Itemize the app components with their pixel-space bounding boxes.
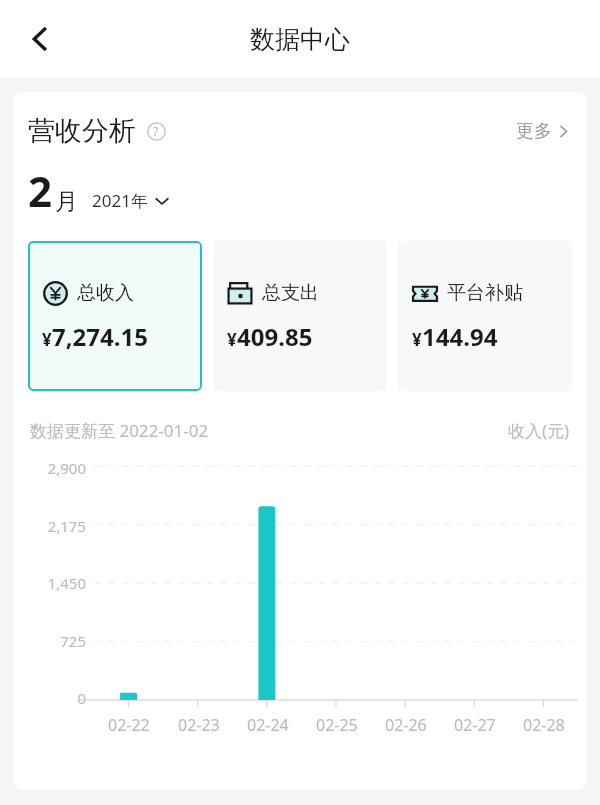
- staticText: 02-23: [178, 714, 220, 736]
- button[interactable]: Back: [14, 13, 66, 65]
- staticText: 725: [60, 631, 86, 651]
- staticText: ¥: [227, 328, 237, 351]
- staticText: ?: [153, 123, 159, 139]
- staticText: 营收分析: [28, 114, 136, 148]
- staticText: 月: [55, 187, 78, 216]
- staticText: 平台补贴: [447, 281, 523, 305]
- staticText: 总收入: [77, 281, 134, 305]
- staticText: ¥: [412, 328, 422, 351]
- button[interactable]: 总收入: [28, 241, 202, 391]
- staticText: 02-28: [523, 714, 565, 736]
- staticText: 总支出: [262, 281, 319, 305]
- staticText: 2,175: [47, 516, 86, 536]
- button[interactable]: 平台补贴: [398, 241, 572, 391]
- staticText: ¥: [42, 328, 52, 351]
- staticText: 收入(元): [508, 419, 570, 442]
- staticText: 409.85: [237, 320, 313, 353]
- staticText: 2021年: [92, 189, 148, 212]
- staticText: 02-26: [385, 714, 427, 736]
- staticText: 144.94: [422, 320, 498, 353]
- button[interactable]: Help: [144, 119, 168, 143]
- staticText: 02-25: [316, 714, 358, 736]
- staticText: 02-24: [247, 714, 289, 736]
- staticText: 02-27: [454, 714, 496, 736]
- button[interactable]: 总支出: [213, 241, 387, 391]
- button[interactable]: 2021年: [90, 186, 171, 215]
- staticText: 数据中心: [250, 24, 350, 55]
- staticText: 更多: [516, 120, 552, 143]
- staticText: 数据更新至 2022-01-02: [30, 419, 209, 442]
- staticText: 02-22: [108, 714, 150, 736]
- staticText: 2,900: [47, 458, 86, 478]
- staticText: 0: [77, 688, 86, 708]
- staticText: 2: [28, 162, 53, 219]
- staticText: 7,274.15: [52, 320, 148, 353]
- button[interactable]: 更多: [514, 116, 572, 147]
- staticText: 1,450: [47, 573, 86, 593]
